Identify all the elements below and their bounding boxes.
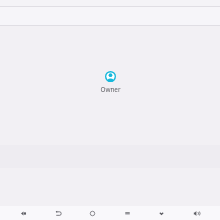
- other: Owner account: [105, 71, 116, 82]
- button[interactable]: Home: [82, 206, 103, 220]
- button[interactable]: Back: [13, 206, 34, 220]
- button[interactable]: Recent apps: [117, 206, 138, 220]
- button[interactable]: Volume: [186, 206, 207, 220]
- staticText: Owner: [100, 85, 121, 94]
- button[interactable]: Back: [48, 206, 69, 220]
- button[interactable]: Owner account: [90, 71, 130, 94]
- button[interactable]: Hide: [151, 206, 172, 220]
